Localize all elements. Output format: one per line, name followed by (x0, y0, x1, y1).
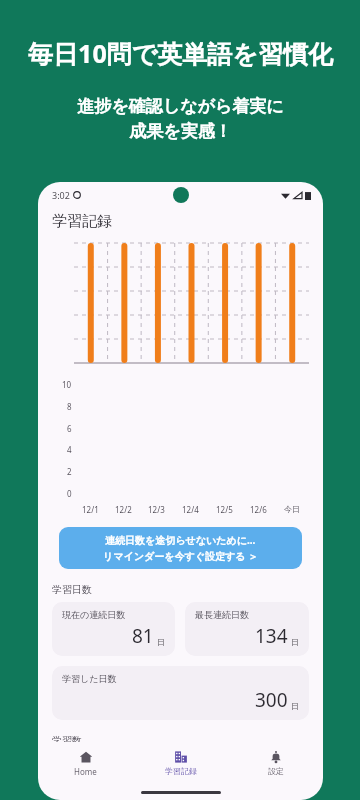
staticText: 300 (255, 687, 288, 713)
staticText: 12/4 (182, 504, 199, 515)
button[interactable]: 設定 (228, 742, 323, 784)
staticText: リマインダーを今すぐ設定する ＞ (103, 549, 258, 563)
staticText: 成果を実感！ (129, 121, 232, 142)
staticText: 設定 (268, 766, 284, 776)
staticText: 日 (291, 637, 299, 647)
staticText: 日 (157, 637, 165, 647)
button[interactable]: 学習した日数 (52, 666, 309, 720)
staticText: 12/6 (250, 504, 267, 515)
staticText: 最長連続日数 (195, 609, 249, 620)
button[interactable]: 最長連続日数 (185, 602, 309, 656)
staticText: 学習記録 (52, 212, 112, 231)
staticText: 学習した日数 (62, 673, 117, 684)
staticText: 進捗を確認しながら着実に (77, 96, 284, 117)
staticText: 0 (67, 488, 72, 499)
staticText: Home (74, 766, 97, 777)
staticText: 12/5 (216, 504, 233, 515)
button[interactable]: 現在の連続日数 (52, 602, 175, 656)
staticText: 12/2 (115, 504, 132, 515)
staticText: 6 (67, 423, 72, 434)
staticText: 12/3 (148, 504, 165, 515)
staticText: 日 (291, 701, 299, 711)
staticText: 今日 (284, 504, 300, 514)
staticText: 学習記録 (165, 766, 197, 776)
button[interactable]: 連続日数を途切らせないために... (59, 527, 302, 569)
staticText: 毎日10問で英単語を習慣化 (28, 36, 333, 70)
staticText: 8 (67, 401, 72, 412)
staticText: 10 (62, 379, 72, 390)
staticText: 134 (255, 623, 288, 649)
staticText: 学習日数 (52, 583, 92, 596)
staticText: 4 (67, 444, 72, 455)
staticText: 学習数 (52, 734, 82, 742)
staticText: 現在の連続日数 (62, 609, 126, 620)
button[interactable]: Home (38, 742, 133, 784)
staticText: 81 (132, 623, 154, 649)
staticText: 3:02 (52, 189, 70, 201)
staticText: 2 (67, 466, 72, 477)
button[interactable]: 学習記録 (133, 742, 228, 784)
staticText: 連続日数を途切らせないために... (105, 533, 256, 547)
staticText: 12/1 (82, 504, 99, 515)
